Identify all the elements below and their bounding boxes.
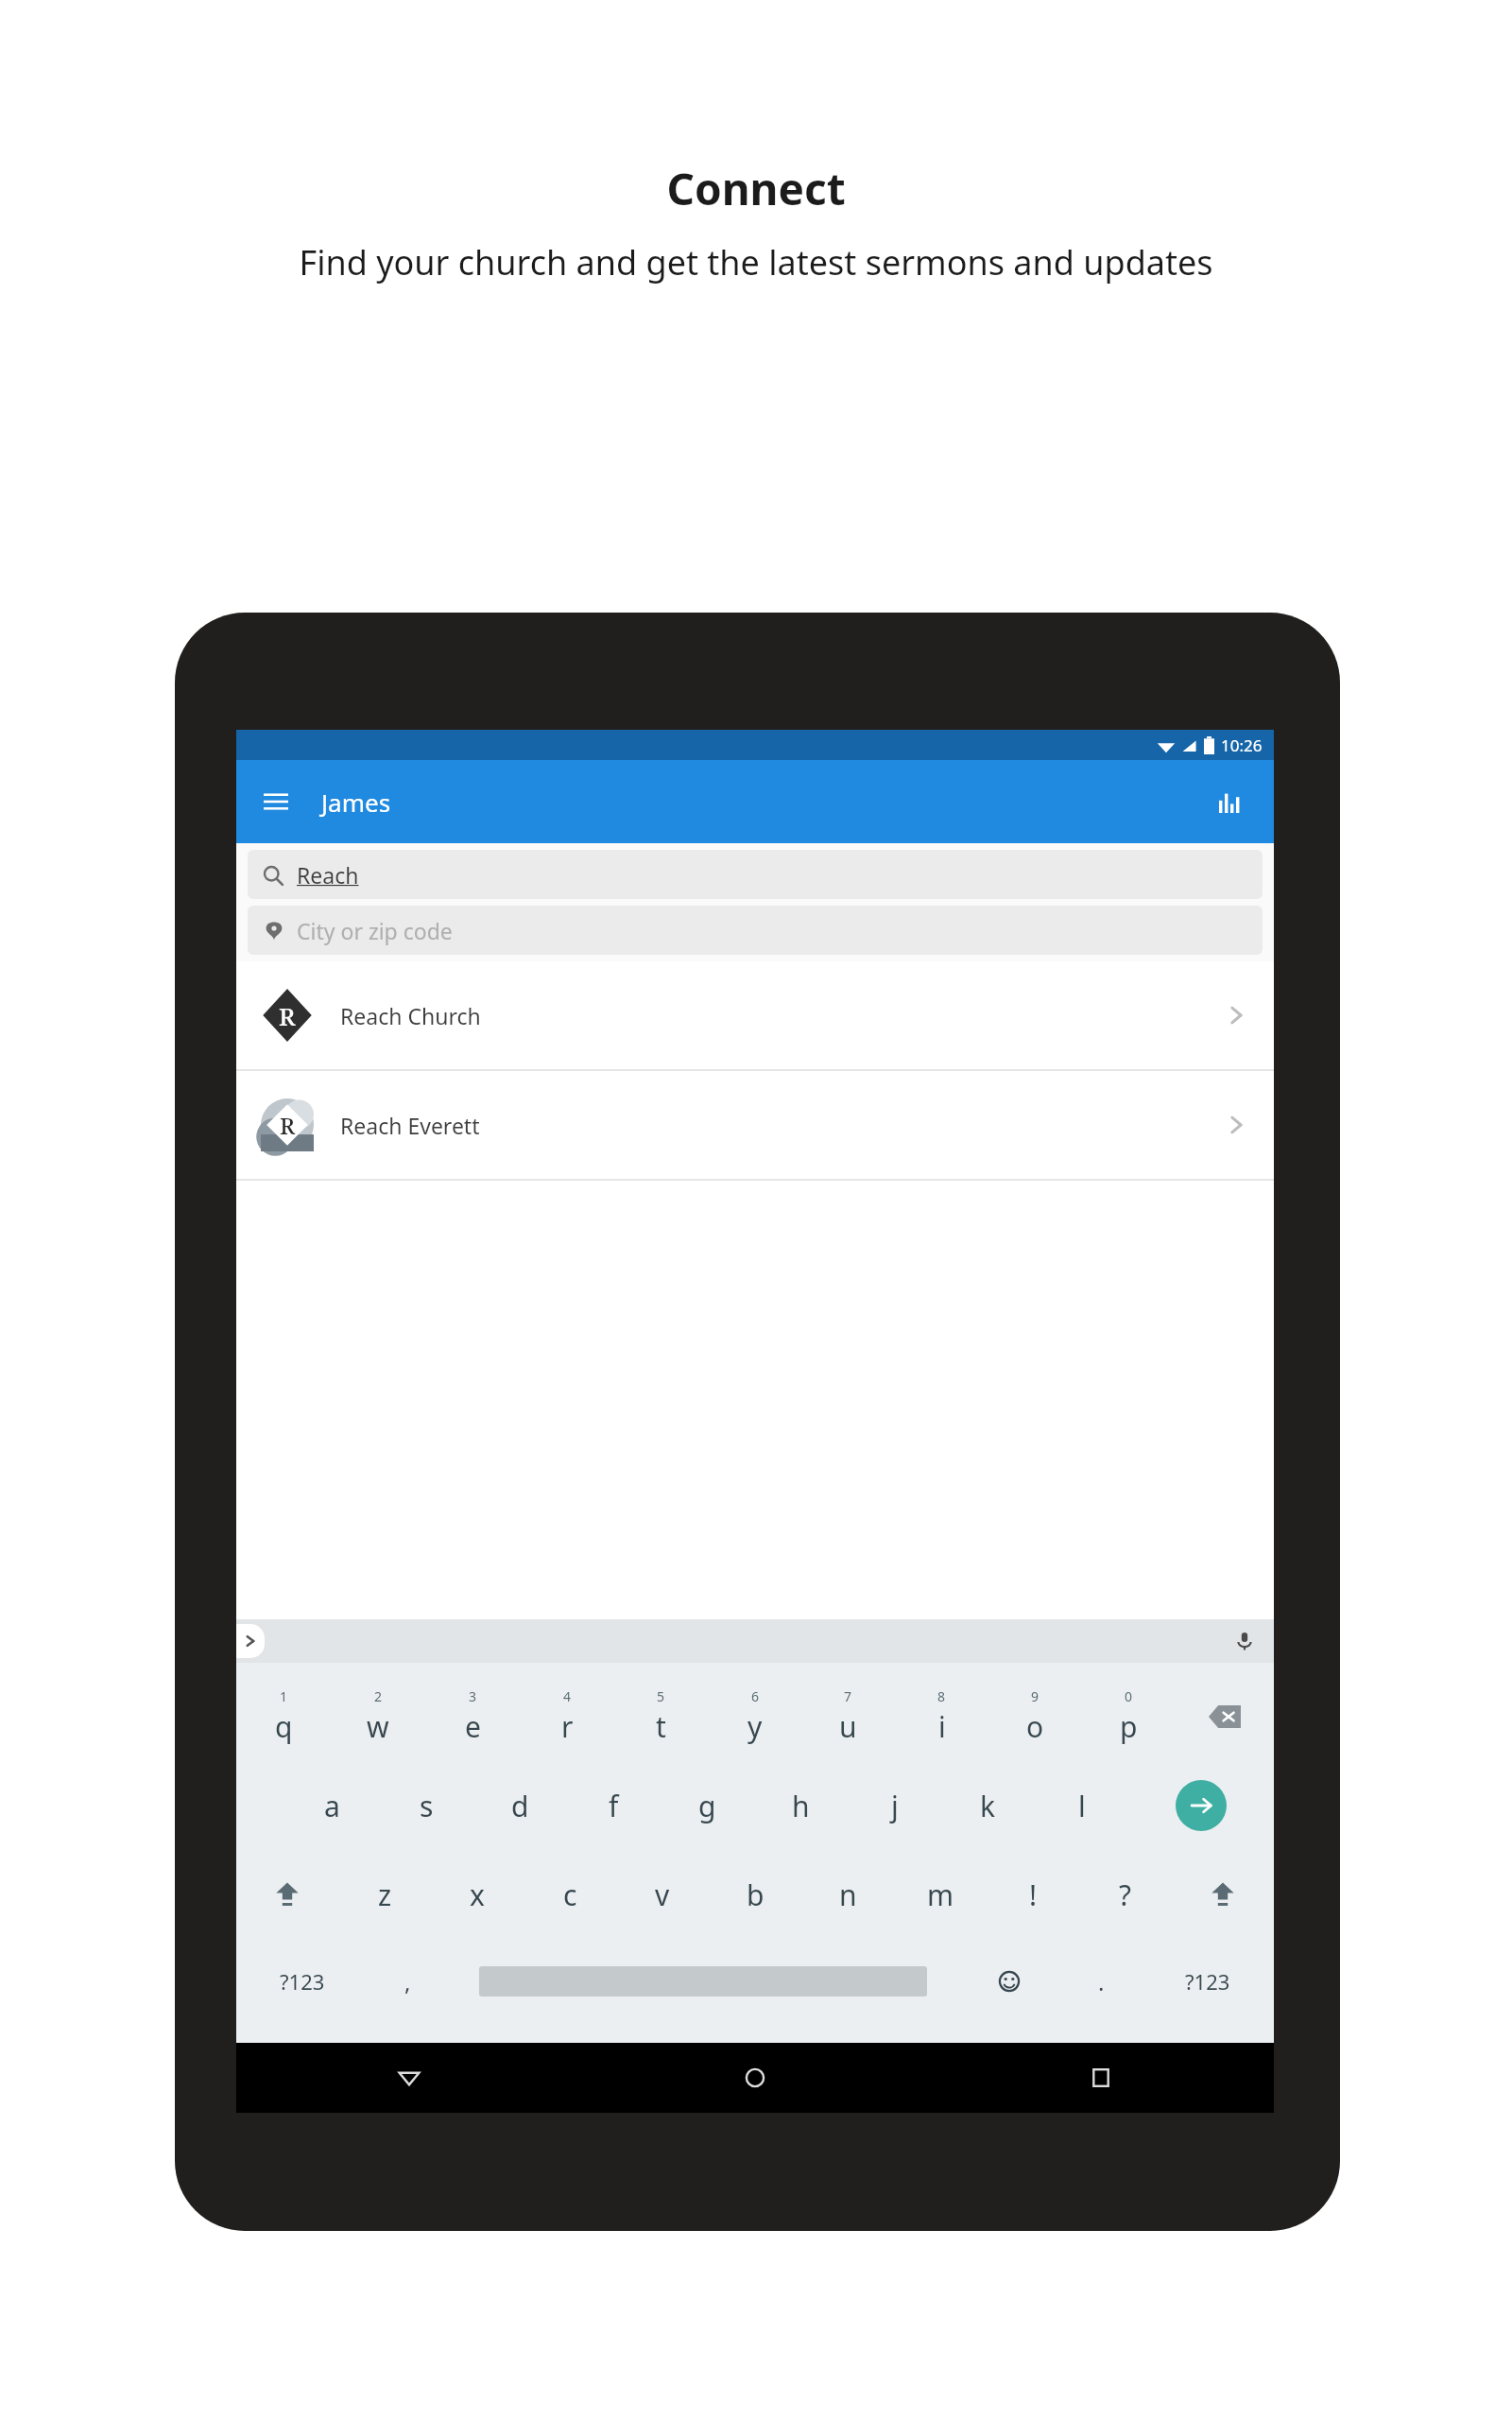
staticText: Reach Everett	[340, 1111, 1223, 1140]
button[interactable]: Expand suggestions	[236, 1624, 265, 1658]
staticText: d	[511, 1787, 529, 1825]
staticText: Find your church and get the latest serm…	[255, 239, 1257, 285]
button[interactable]: Emoji	[957, 1939, 1061, 2024]
button[interactable]: R	[236, 1071, 1274, 1179]
button[interactable]: Home	[582, 2043, 928, 2113]
staticText: 0	[1125, 1687, 1133, 1705]
button[interactable]: Enter	[1128, 1761, 1274, 1850]
button[interactable]: 9	[988, 1672, 1082, 1761]
button[interactable]: .	[1061, 1939, 1142, 2024]
button[interactable]: Space	[448, 1939, 957, 2024]
staticText: 4	[563, 1687, 572, 1705]
staticText: s	[420, 1787, 434, 1825]
staticText: ?123	[280, 1967, 325, 1996]
button[interactable]: n	[801, 1850, 894, 1939]
staticText: 10:26	[1221, 735, 1263, 756]
staticText: Connect	[666, 159, 846, 218]
staticText: r	[561, 1707, 574, 1746]
staticText: e	[465, 1707, 481, 1746]
button[interactable]: ?123	[1142, 1939, 1274, 2024]
staticText: f	[609, 1787, 619, 1825]
button[interactable]: d	[473, 1761, 567, 1850]
button[interactable]: h	[754, 1761, 848, 1850]
staticText: 6	[751, 1687, 760, 1705]
button[interactable]: 6	[708, 1672, 801, 1761]
button[interactable]: v	[616, 1850, 709, 1939]
button[interactable]: 1	[236, 1672, 331, 1761]
staticText: 7	[844, 1687, 852, 1705]
button[interactable]: Back	[236, 2043, 582, 2113]
staticText: x	[470, 1875, 485, 1914]
button[interactable]: m	[894, 1850, 987, 1939]
staticText: 2	[374, 1687, 383, 1705]
staticText: c	[563, 1875, 577, 1914]
button[interactable]: 3	[425, 1672, 520, 1761]
button[interactable]: a	[284, 1761, 379, 1850]
button[interactable]: 4	[520, 1672, 614, 1761]
button[interactable]: Backspace	[1176, 1672, 1274, 1761]
button[interactable]: Statistics	[1206, 777, 1255, 826]
staticText: ?	[1119, 1875, 1132, 1914]
staticText: James	[321, 786, 391, 819]
staticText: m	[927, 1875, 954, 1914]
staticText: Reach Church	[340, 1001, 1223, 1030]
button[interactable]: z	[338, 1850, 431, 1939]
staticText: j	[891, 1787, 899, 1825]
button[interactable]: City or zip code	[248, 906, 1263, 955]
button[interactable]: ,	[368, 1939, 448, 2024]
staticText: 3	[469, 1687, 477, 1705]
button[interactable]: 8	[895, 1672, 988, 1761]
button[interactable]: f	[567, 1761, 661, 1850]
staticText: 9	[1031, 1687, 1039, 1705]
staticText: v	[655, 1875, 670, 1914]
button[interactable]: Shift	[236, 1850, 338, 1939]
button[interactable]: c	[524, 1850, 616, 1939]
staticText: ?123	[1185, 1967, 1230, 1996]
staticText: 8	[937, 1687, 946, 1705]
staticText: u	[839, 1707, 857, 1746]
staticText: z	[378, 1875, 392, 1914]
staticText: 1	[280, 1687, 288, 1705]
button[interactable]: 5	[614, 1672, 708, 1761]
staticText: City or zip code	[297, 916, 453, 945]
button[interactable]: s	[379, 1761, 473, 1850]
button[interactable]: b	[709, 1850, 801, 1939]
staticText: !	[1029, 1875, 1038, 1914]
staticText: g	[698, 1787, 716, 1825]
staticText: o	[1026, 1707, 1044, 1746]
staticText: w	[367, 1707, 389, 1746]
staticText: b	[747, 1875, 765, 1914]
button[interactable]: x	[431, 1850, 524, 1939]
staticText: .	[1098, 1966, 1105, 1997]
button[interactable]: Recent apps	[928, 2043, 1274, 2113]
staticText: 5	[657, 1687, 665, 1705]
button[interactable]: 0	[1082, 1672, 1176, 1761]
button[interactable]: 7	[801, 1672, 895, 1761]
button[interactable]: ?123	[236, 1939, 368, 2024]
button[interactable]: 2	[331, 1672, 425, 1761]
staticText: l	[1078, 1787, 1086, 1825]
button[interactable]: Shift	[1172, 1850, 1274, 1939]
button[interactable]: k	[941, 1761, 1035, 1850]
button[interactable]: ?	[1079, 1850, 1172, 1939]
staticText: k	[980, 1787, 996, 1825]
staticText: R	[280, 1110, 296, 1141]
staticText: a	[324, 1787, 340, 1825]
button[interactable]: g	[661, 1761, 754, 1850]
staticText: i	[938, 1707, 946, 1746]
button[interactable]: l	[1035, 1761, 1128, 1850]
button[interactable]: R	[236, 961, 1274, 1069]
staticText: Reach	[297, 860, 359, 890]
staticText: t	[656, 1707, 666, 1746]
button[interactable]: Open navigation menu	[251, 777, 301, 826]
staticText: ,	[404, 1966, 411, 1997]
button[interactable]: Reach	[248, 850, 1263, 899]
staticText: h	[792, 1787, 810, 1825]
button[interactable]: j	[848, 1761, 941, 1850]
staticText: y	[747, 1707, 763, 1746]
button[interactable]: !	[987, 1850, 1079, 1939]
staticText: p	[1120, 1707, 1138, 1746]
button[interactable]: Voice input	[1228, 1625, 1261, 1657]
staticText: n	[839, 1875, 857, 1914]
staticText: R	[279, 999, 296, 1032]
